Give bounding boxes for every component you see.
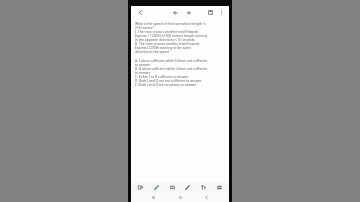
staticText: What is the speed of the train whose len… [135,21,206,25]
button[interactable]: Save [206,8,215,17]
staticText: D. Both I and II are not sufficient to a… [135,78,202,82]
staticText: B. II alone sufficient while I alone not… [135,66,208,70]
staticText: 210 meters? [135,25,154,29]
staticText: A. I alone sufficient while II alone not… [135,58,208,62]
button[interactable]: Back [202,193,211,202]
button[interactable]: More options [217,8,226,17]
staticText: C. Either I or II sufficient to answer [135,74,189,78]
staticText: Express / 1200ft) of 300 meters length r… [135,33,208,37]
button[interactable]: Undo [171,8,180,17]
button[interactable]: Pen [151,182,162,193]
staticText: II. The train crosses another train(Howr… [135,41,200,45]
staticText: to answer [135,70,151,74]
button[interactable]: Highlighter [182,182,193,193]
staticText: I. The train crosses another train(Howra… [135,29,199,33]
staticText: Express/1200ft) running in the same [135,45,192,49]
staticText: E. Both I and II are necessary to answer [135,82,197,86]
button[interactable]: Back [136,8,145,17]
staticText: in the opposite direction in 15 seconds [135,37,195,41]
staticText: to answer [135,62,151,66]
button[interactable]: Home [176,193,185,202]
button[interactable]: Recent apps [149,193,158,202]
button[interactable]: Redo [184,8,193,17]
button[interactable]: Insert image [135,182,146,193]
staticText: direction at the speed [135,49,169,53]
button[interactable]: Eraser [167,182,178,193]
button[interactable]: Select [214,182,225,193]
button[interactable]: Text style [198,182,209,193]
